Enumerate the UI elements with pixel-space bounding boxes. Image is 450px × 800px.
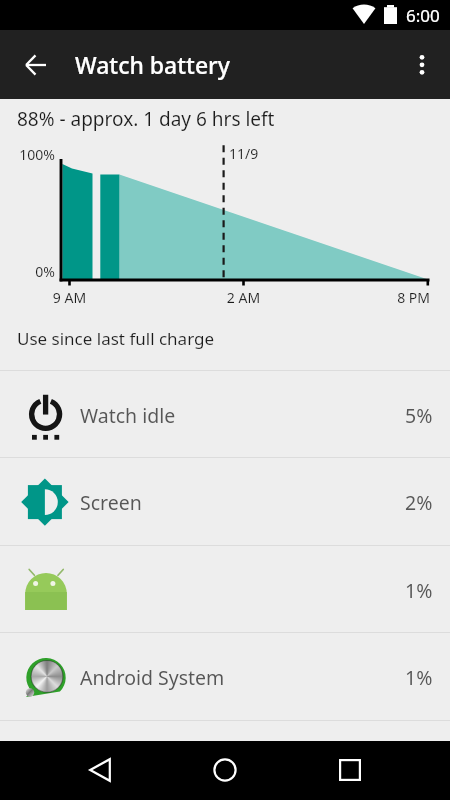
staticText: Watch battery (75, 49, 230, 80)
staticText: 6:00 (406, 4, 440, 27)
staticText: 9 AM (39, 288, 100, 307)
staticText: 2 AM (213, 288, 274, 307)
staticText: Android System (80, 664, 225, 691)
staticText: 11/9 (229, 144, 259, 163)
staticText: 8 PM (370, 288, 430, 307)
staticText: Screen (80, 489, 142, 516)
button[interactable]: Home (200, 745, 250, 795)
button[interactable]: Watch idle (0, 371, 450, 457)
staticText: Use since last full charge (17, 327, 215, 350)
staticText: 88% - approx. 1 day 6 hrs left (17, 106, 275, 132)
button[interactable]: Screen (0, 458, 450, 545)
staticText: 1% (405, 664, 433, 691)
staticText: 100% (5, 145, 55, 164)
button[interactable]: Android System (0, 633, 450, 720)
button[interactable]: Back (75, 745, 125, 795)
button[interactable]: Recent apps (325, 745, 375, 795)
staticText: 5% (405, 402, 433, 429)
staticText: 1% (405, 577, 433, 604)
button[interactable]: More options (398, 41, 446, 89)
button[interactable]: 1% (0, 546, 450, 632)
button[interactable]: Back (11, 41, 59, 89)
staticText: Watch idle (80, 402, 176, 429)
staticText: 2% (405, 489, 433, 516)
staticText: 0% (16, 262, 55, 281)
